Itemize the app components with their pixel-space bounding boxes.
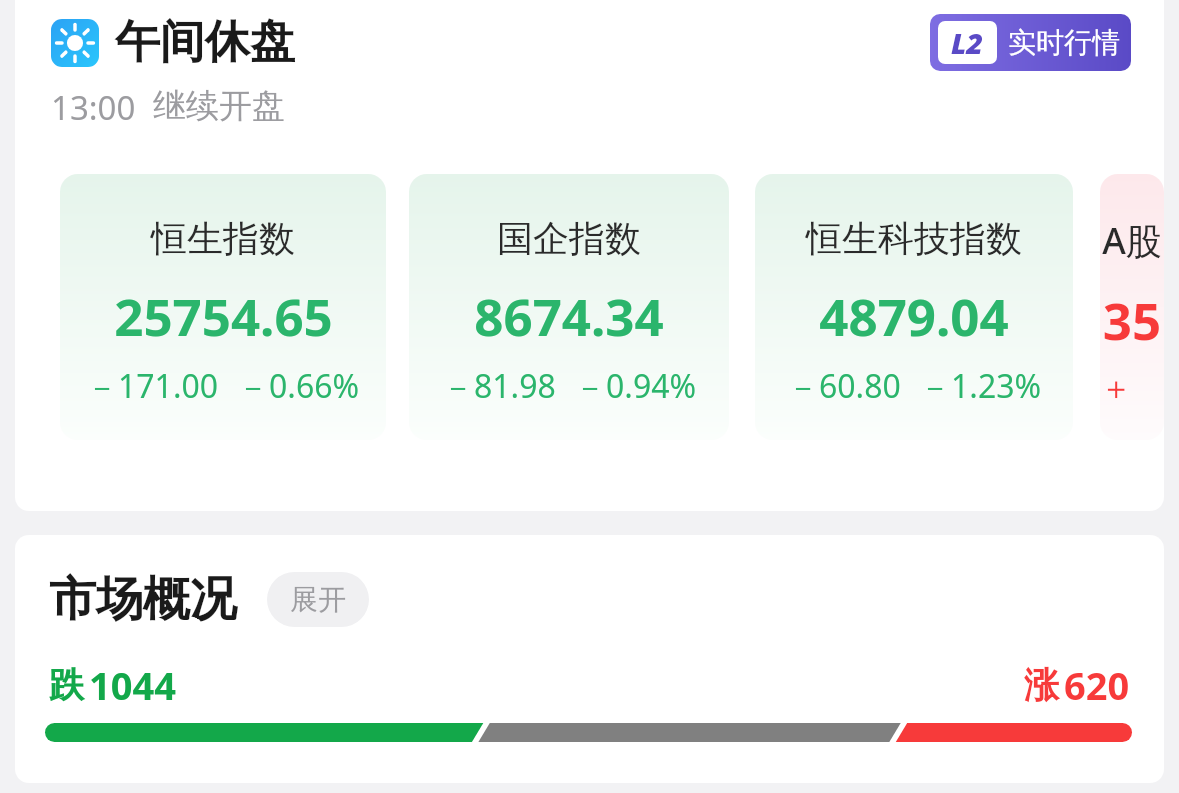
staticText: 恒生指数 — [151, 216, 295, 261]
staticText: A股指数 — [1100, 216, 1164, 265]
button[interactable]: 涨跌分布 — [45, 723, 1132, 742]
button[interactable]: L2 — [930, 14, 1131, 71]
staticText: 620 — [1064, 659, 1130, 711]
other: 午间休盘 — [51, 19, 99, 67]
staticText: －81.98 — [442, 364, 556, 408]
staticText: L2 — [951, 23, 984, 62]
staticText: 国企指数 — [497, 216, 641, 261]
staticText: 午间休盘 — [115, 14, 295, 71]
staticText: －1.23% — [919, 364, 1042, 408]
staticText: 3500.12 — [1100, 285, 1164, 354]
staticText: 市场概况 — [49, 570, 237, 629]
button[interactable]: 恒生指数 — [60, 174, 386, 440]
staticText: 25754.65 — [114, 281, 333, 350]
staticText: 1044 — [89, 659, 176, 711]
button[interactable]: 国企指数 — [409, 174, 729, 440]
staticText: 实时行情 — [1008, 25, 1120, 60]
staticText: 继续开盘 — [153, 85, 285, 127]
staticText: 涨 — [1024, 663, 1059, 707]
staticText: 展开 — [290, 582, 346, 617]
button[interactable]: A股指数 — [1100, 174, 1164, 440]
staticText: 4879.04 — [819, 281, 1009, 350]
staticText: －60.80 — [787, 364, 901, 408]
staticText: －0.94% — [574, 364, 697, 408]
button[interactable]: 恒生科技指数 — [755, 174, 1073, 440]
staticText: 恒生科技指数 — [806, 216, 1022, 261]
staticText: ＋12.00 — [1100, 368, 1164, 408]
staticText: 跌 — [49, 663, 84, 707]
button[interactable]: 展开 — [267, 572, 369, 627]
staticText: －171.00 — [86, 364, 219, 408]
staticText: 13:00 — [51, 85, 136, 130]
staticText: 8674.34 — [474, 281, 664, 350]
staticText: －0.66% — [237, 364, 360, 408]
